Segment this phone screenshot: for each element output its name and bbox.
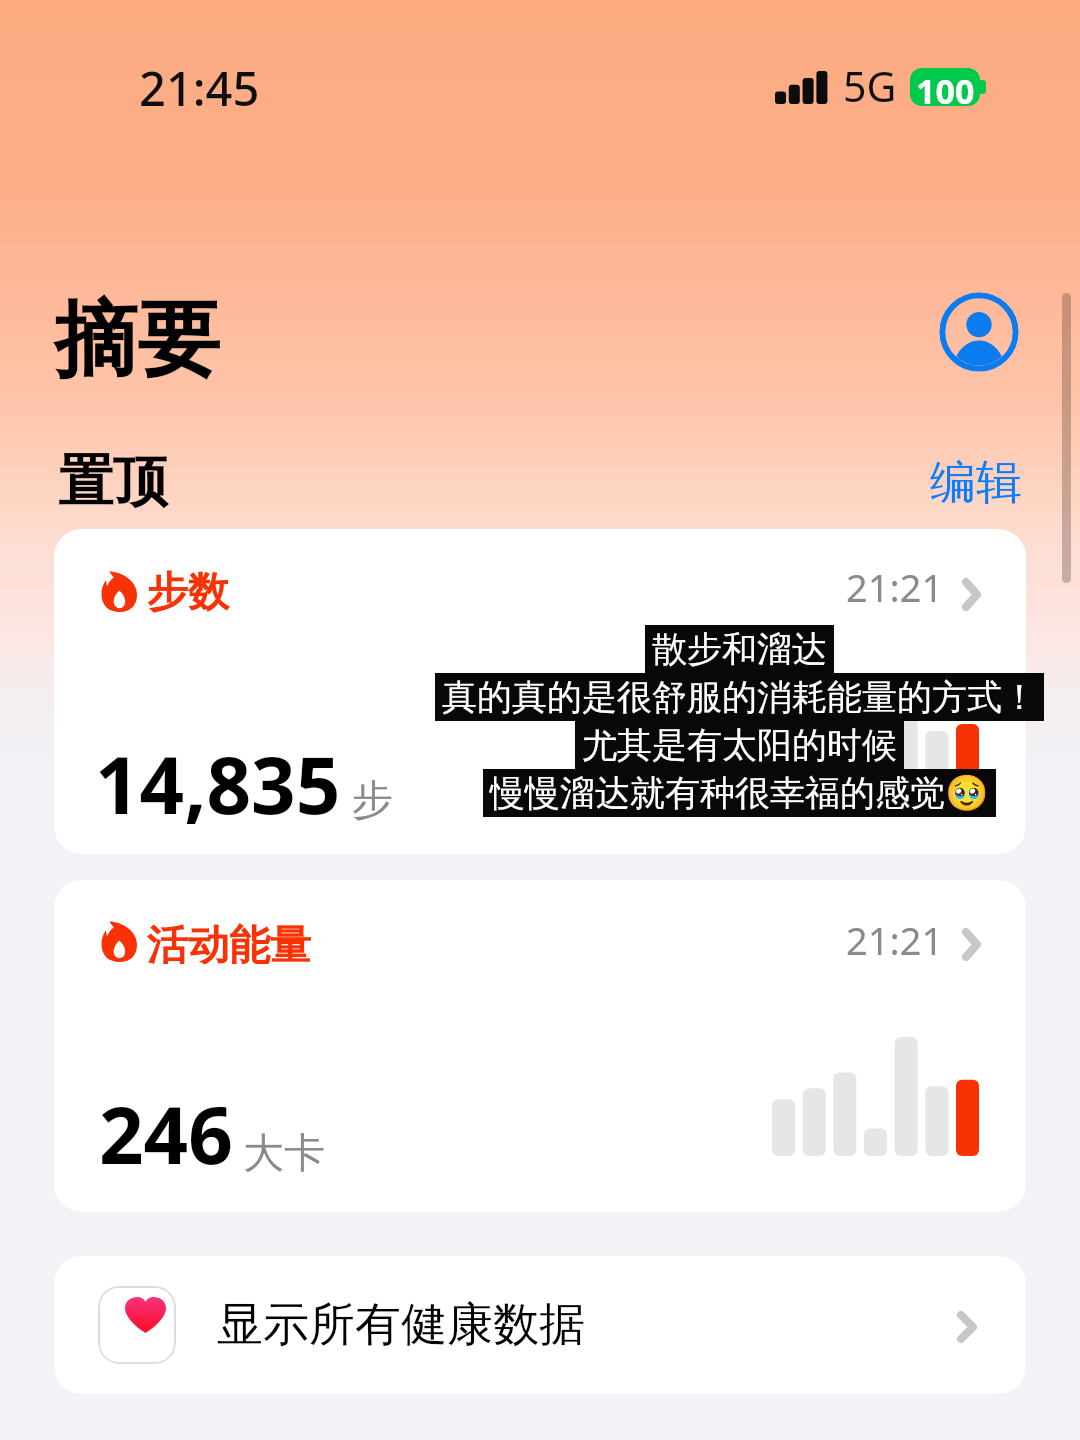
staticText: 尤其是有太阳的时候 [582, 723, 897, 767]
staticText: 100 [916, 68, 975, 106]
staticText: 编辑 [930, 454, 1022, 512]
staticText: 21:21 [846, 914, 944, 966]
staticText: 慢慢溜达就有种很幸福的感觉🥹 [490, 771, 989, 815]
staticText: 步数 [147, 567, 229, 619]
staticText: 真的真的是很舒服的消耗能量的方式！ [442, 675, 1037, 719]
other: Battery 100 percent [910, 68, 980, 106]
staticText: 置顶 [58, 447, 168, 516]
staticText: 21:21 [846, 561, 944, 613]
button[interactable]: 步数 [54, 529, 1026, 854]
staticText: 显示所有健康数据 [217, 1296, 585, 1354]
staticText: 活动能量 [147, 920, 311, 972]
staticText: 5G [843, 58, 897, 114]
staticText: 摘要 [54, 288, 220, 393]
button[interactable]: 显示所有健康数据 [54, 1256, 1026, 1394]
button[interactable]: Profile [938, 291, 1020, 373]
other: Cellular signal [775, 71, 827, 104]
staticText: 散步和溜达 [652, 627, 827, 671]
button[interactable]: 活动能量 [54, 880, 1026, 1212]
button[interactable]: 编辑 [912, 440, 1040, 526]
staticText: 大卡 [243, 1128, 325, 1180]
staticText: 21:45 [139, 56, 260, 120]
staticText: 步 [352, 775, 393, 827]
staticText: 246 [99, 1081, 233, 1187]
staticText: 14,835 [95, 731, 341, 837]
